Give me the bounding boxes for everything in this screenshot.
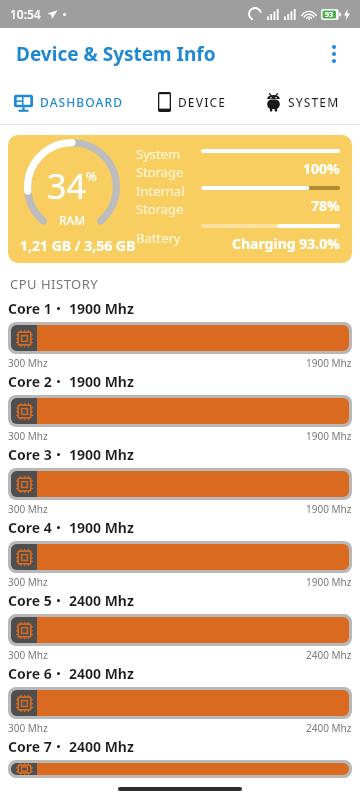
staticText: 10:54 (10, 6, 41, 22)
staticText: RAM (59, 212, 86, 228)
staticText: Device & System Info (16, 41, 216, 67)
button[interactable] (8, 687, 352, 719)
staticText: 1900 Mhz (69, 299, 134, 318)
staticText: Core 3 (8, 445, 52, 464)
staticText: 1900 Mhz (306, 502, 352, 516)
staticText: 1900 Mhz (69, 372, 134, 391)
staticText: 1900 Mhz (69, 445, 134, 464)
staticText: 93 (325, 10, 334, 20)
staticText: CPU HISTORY (10, 275, 99, 293)
staticText: 78% (311, 196, 340, 215)
button[interactable] (8, 395, 352, 427)
staticText: 300 Mhz (8, 356, 48, 370)
button[interactable]: DASHBOARD (0, 80, 137, 124)
button[interactable] (8, 614, 352, 646)
staticText: 2400 Mhz (69, 737, 134, 756)
staticText: SYSTEM (288, 94, 340, 110)
staticText: 2400 Mhz (69, 591, 134, 610)
staticText: 1900 Mhz (306, 356, 352, 370)
staticText: Core 1 (8, 299, 52, 318)
staticText: Battery (136, 229, 181, 247)
button[interactable] (8, 468, 352, 500)
staticText: Core 5 (8, 591, 52, 610)
staticText: Core 4 (8, 518, 52, 537)
button[interactable]: SYSTEM (246, 80, 360, 124)
button[interactable]: DEVICE (137, 80, 246, 124)
staticText: 2400 Mhz (306, 721, 352, 735)
staticText: Internal Storage (136, 182, 185, 218)
button[interactable]: 34 (8, 135, 352, 263)
button[interactable] (8, 541, 352, 573)
button[interactable] (8, 322, 352, 354)
staticText: 300 Mhz (8, 721, 48, 735)
staticText: 34 (47, 163, 86, 209)
staticText: Charging 93.0% (232, 234, 340, 253)
staticText: 1,21 GB / 3,56 GB (20, 236, 136, 255)
staticText: DASHBOARD (40, 94, 124, 110)
staticText: 300 Mhz (8, 648, 48, 662)
staticText: 1900 Mhz (306, 575, 352, 589)
staticText: Core 2 (8, 372, 52, 391)
staticText: Core 6 (8, 664, 52, 683)
staticText: 2400 Mhz (69, 664, 134, 683)
staticText: 300 Mhz (8, 575, 48, 589)
staticText: % (86, 167, 97, 185)
staticText: 1900 Mhz (69, 518, 134, 537)
staticText: Core 7 (8, 737, 52, 756)
staticText: 300 Mhz (8, 429, 48, 443)
staticText: System Storage (136, 145, 184, 181)
staticText: 100% (303, 159, 340, 178)
button[interactable] (8, 760, 352, 778)
button[interactable]: More options (316, 36, 352, 72)
staticText: DEVICE (178, 94, 226, 110)
staticText: 2400 Mhz (306, 648, 352, 662)
staticText: 300 Mhz (8, 502, 48, 516)
staticText: 1900 Mhz (306, 429, 352, 443)
